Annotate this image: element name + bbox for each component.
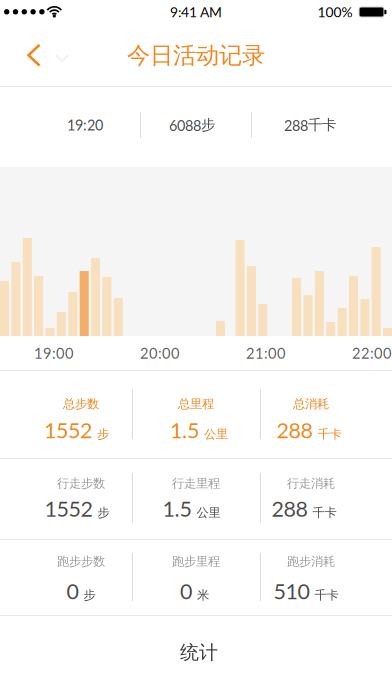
staticText: 跑步里程 (172, 554, 220, 569)
staticText: 288 (271, 496, 307, 521)
staticText: 1552 (44, 496, 92, 521)
staticText: 步 (97, 505, 109, 520)
staticText: 288千卡 (284, 116, 336, 134)
staticText: 9:41 AM (170, 4, 222, 20)
staticText: 行走步数 (57, 476, 105, 491)
staticText: 总步数 (63, 396, 99, 412)
staticText: 20:00 (140, 344, 180, 362)
button[interactable]: 统计 (0, 616, 392, 696)
staticText: 0 (66, 578, 78, 604)
staticText: 千卡 (314, 587, 338, 603)
staticText: 19:00 (34, 344, 74, 362)
staticText: 千卡 (312, 505, 336, 520)
staticText: 22:00 (352, 344, 392, 362)
staticText: 公里 (204, 426, 228, 442)
staticText: 行走消耗 (287, 476, 335, 491)
staticText: 19:20 (67, 116, 103, 134)
staticText: 1.5 (170, 417, 199, 443)
staticText: 510 (273, 578, 309, 604)
staticText: 步 (83, 587, 95, 603)
staticText: 1552 (44, 417, 92, 443)
staticText: 米 (197, 587, 209, 603)
staticText: 1.5 (162, 496, 191, 521)
staticText: 0 (180, 578, 192, 604)
staticText: 总里程 (178, 396, 214, 412)
button[interactable]: Back (10, 33, 54, 77)
staticText: 跑步步数 (57, 554, 105, 569)
staticText: 总消耗 (293, 396, 329, 412)
staticText: 288 (276, 417, 312, 443)
staticText: 21:00 (246, 344, 286, 362)
staticText: 行走里程 (172, 476, 220, 491)
staticText: 千卡 (317, 426, 341, 442)
staticText: 100% (317, 4, 352, 20)
staticText: 跑步消耗 (287, 554, 335, 569)
staticText: 公里 (196, 505, 220, 520)
staticText: 6088步 (169, 116, 215, 134)
staticText: 步 (97, 426, 109, 442)
staticText: 统计 (180, 641, 218, 664)
staticText: 今日活动记录 (127, 41, 265, 70)
